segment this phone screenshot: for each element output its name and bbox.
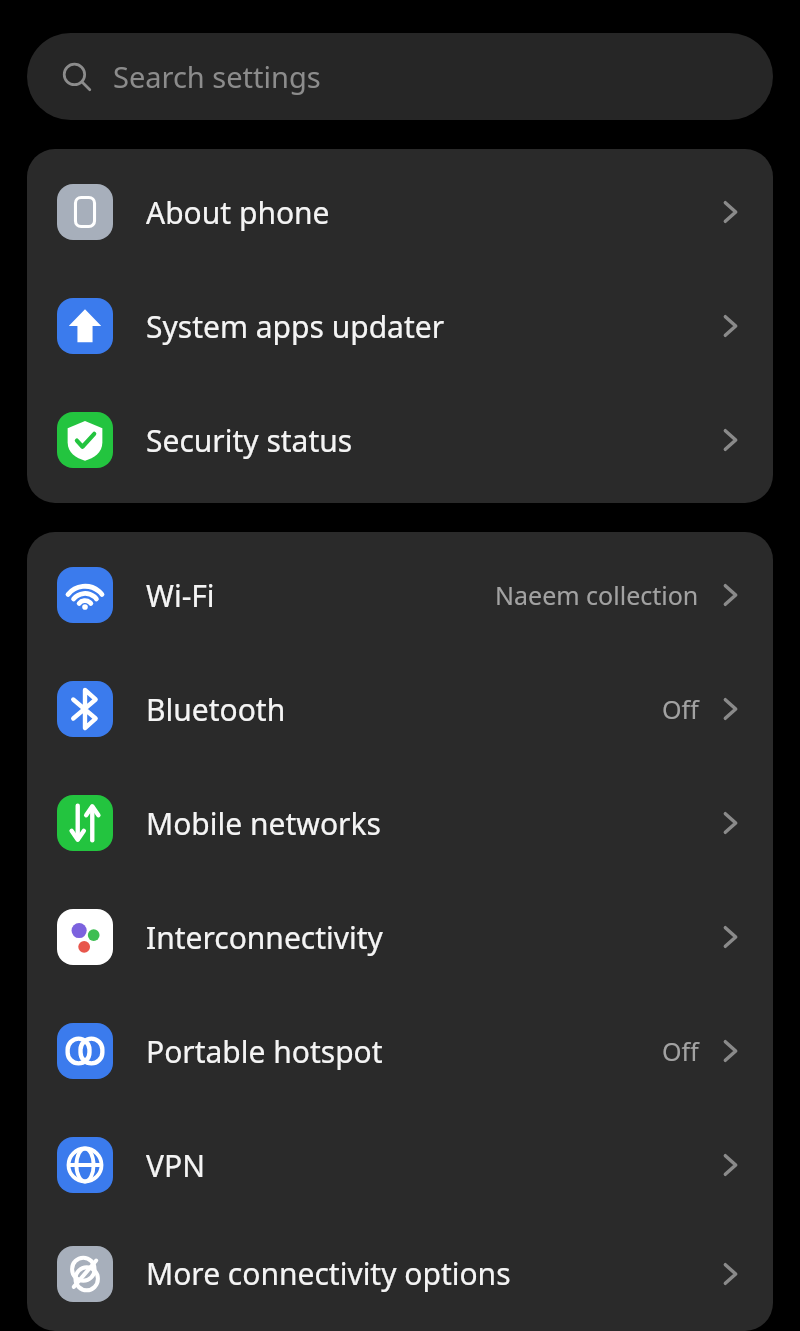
button[interactable]: About phone	[27, 155, 773, 269]
staticText: Search settings	[113, 57, 321, 96]
staticText: More connectivity options	[146, 1253, 717, 1294]
button[interactable]: Portable hotspot	[27, 994, 773, 1108]
staticText: System apps updater	[146, 306, 717, 347]
button[interactable]: More connectivity options	[27, 1222, 773, 1325]
staticText: Portable hotspot	[146, 1031, 662, 1072]
staticText: Bluetooth	[146, 689, 662, 730]
staticText: About phone	[146, 192, 717, 233]
button[interactable]: Interconnectivity	[27, 880, 773, 994]
staticText: Security status	[146, 420, 717, 461]
button[interactable]: Security status	[27, 383, 773, 497]
staticText: Mobile networks	[146, 803, 717, 844]
button[interactable]: Mobile networks	[27, 766, 773, 880]
staticText: Off	[662, 1034, 699, 1068]
staticText: Naeem collection	[495, 578, 699, 612]
button[interactable]: Bluetooth	[27, 652, 773, 766]
staticText: Off	[662, 692, 699, 726]
staticText: VPN	[146, 1145, 717, 1186]
staticText: Interconnectivity	[146, 917, 717, 958]
button[interactable]: Wi-Fi	[27, 538, 773, 652]
button[interactable]: Search settings	[27, 33, 773, 120]
button[interactable]: System apps updater	[27, 269, 773, 383]
staticText: Wi-Fi	[146, 575, 495, 616]
button[interactable]: VPN	[27, 1108, 773, 1222]
